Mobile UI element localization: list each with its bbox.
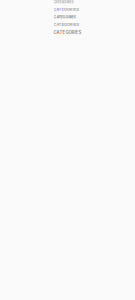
staticText: CATEGORIES [53,22,79,27]
staticText: CATEGORIES [53,0,73,4]
staticText: CATEGORIES [53,15,75,19]
staticText: CATEGORIES [53,30,81,35]
staticText: CATEGORIES [53,7,78,12]
